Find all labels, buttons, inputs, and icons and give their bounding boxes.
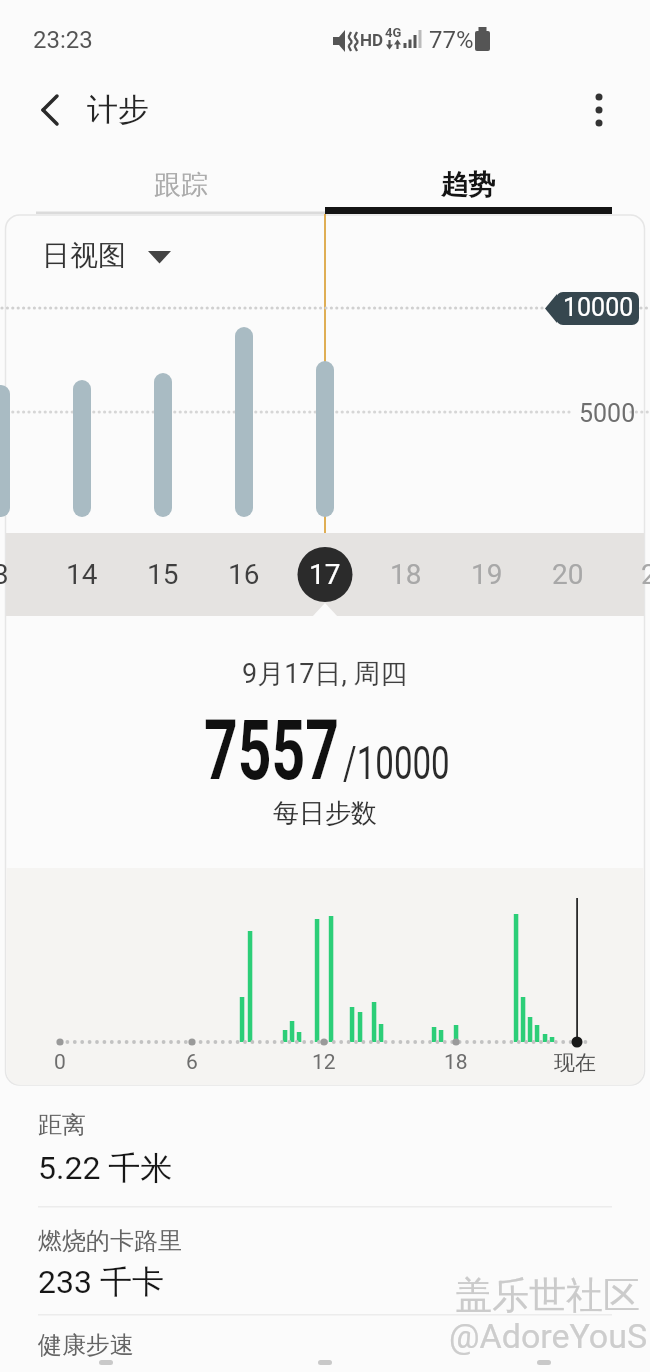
- staticText: 15: [147, 558, 179, 591]
- staticText: 18: [390, 558, 422, 591]
- staticText: 77%: [429, 26, 474, 54]
- staticText: 健康步速: [38, 1330, 134, 1360]
- staticText: 趋势: [441, 168, 495, 202]
- staticText: 3: [0, 558, 9, 591]
- staticText: 4G: [385, 25, 402, 40]
- button[interactable]: 17: [0, 0, 400, 33]
- staticText: 每日步数: [273, 797, 377, 830]
- staticText: 计步: [87, 90, 149, 129]
- button[interactable]: [325, 150, 612, 214]
- button[interactable]: 20: [0, 0, 400, 33]
- staticText: 现在: [554, 1050, 596, 1076]
- staticText: 日视图: [42, 238, 126, 273]
- button[interactable]: 15: [0, 0, 400, 33]
- button[interactable]: 14: [0, 0, 400, 33]
- staticText: 5000: [579, 399, 636, 428]
- button[interactable]: [0, 1316, 650, 1372]
- staticText: 18: [444, 1050, 468, 1075]
- button[interactable]: [36, 150, 325, 214]
- staticText: 9月17日, 周四: [242, 657, 408, 691]
- button[interactable]: 18: [0, 0, 400, 33]
- staticText: @AdoreYouS: [449, 1316, 648, 1356]
- staticText: 23:23: [33, 26, 93, 54]
- staticText: HD: [360, 30, 384, 50]
- staticText: 燃烧的卡路里: [38, 1226, 182, 1256]
- button[interactable]: [0, 1208, 650, 1314]
- staticText: 10000: [563, 293, 634, 322]
- staticText: 距离: [38, 1110, 86, 1140]
- button[interactable]: 16: [0, 0, 400, 33]
- staticText: /10000: [343, 736, 450, 790]
- staticText: 0: [54, 1050, 66, 1075]
- staticText: 233 千卡: [38, 1262, 164, 1302]
- staticText: 6: [186, 1050, 198, 1075]
- staticText: 19: [471, 558, 503, 591]
- staticText: 17: [309, 558, 341, 591]
- button[interactable]: [28, 84, 80, 136]
- staticText: 7557: [204, 701, 339, 799]
- staticText: 12: [312, 1050, 336, 1075]
- staticText: 16: [228, 558, 260, 591]
- button[interactable]: 日视图: [36, 234, 181, 278]
- button[interactable]: [576, 84, 624, 132]
- staticText: 2: [641, 558, 650, 591]
- staticText: 跟踪: [154, 168, 208, 202]
- button[interactable]: [0, 1096, 650, 1206]
- staticText: 20: [552, 558, 584, 591]
- staticText: 14: [66, 558, 98, 591]
- staticText: 5.22 千米: [38, 1148, 173, 1188]
- button[interactable]: 19: [0, 0, 400, 33]
- staticText: 盖乐世社区: [455, 1272, 640, 1319]
